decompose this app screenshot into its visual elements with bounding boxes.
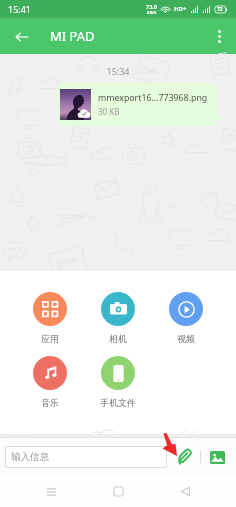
staticText: 72 [217, 6, 223, 13]
button[interactable]: Back [169, 476, 201, 507]
staticText: 视频 [177, 333, 195, 344]
staticText: 73.0 [146, 3, 157, 10]
button[interactable]: 应用 [16, 292, 84, 344]
button[interactable]: Send image [206, 446, 228, 468]
staticText: MI PAD [50, 27, 95, 45]
button[interactable]: 输入信息 [5, 446, 167, 468]
button[interactable]: 相机 [84, 292, 152, 344]
button[interactable]: mmexport16…773968.png [57, 83, 217, 126]
staticText: 音乐 [41, 397, 59, 408]
button[interactable]: More options [206, 23, 232, 49]
staticText: 30 KB [98, 106, 120, 117]
button[interactable]: Recents [35, 476, 67, 507]
button[interactable]: 手机文件 [84, 356, 152, 408]
staticText: HD+ [174, 5, 187, 13]
staticText: 15:41 [8, 3, 32, 15]
staticText: 15:34 [0, 65, 236, 77]
staticText: 输入信息 [11, 451, 49, 463]
button[interactable]: Home [102, 476, 134, 507]
staticText: 相机 [109, 333, 127, 344]
button[interactable]: Attach file [173, 446, 195, 468]
button[interactable]: 音乐 [16, 356, 84, 408]
staticText: KB/S [147, 10, 157, 15]
button[interactable]: Back [8, 23, 35, 50]
staticText: 手机文件 [100, 397, 136, 408]
button[interactable]: 视频 [152, 292, 220, 344]
staticText: 应用 [41, 333, 59, 344]
staticText: mmexport16…773968.png [98, 92, 208, 104]
